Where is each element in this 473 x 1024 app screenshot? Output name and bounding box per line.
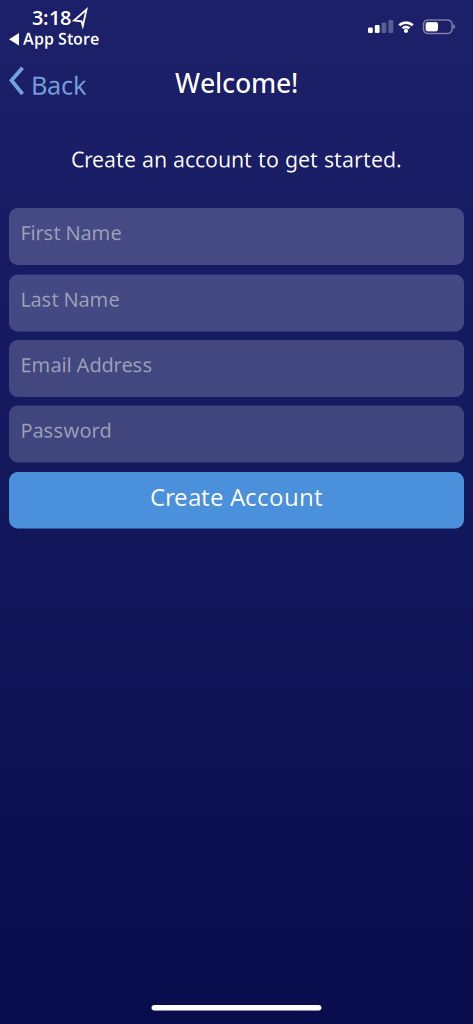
staticText: 3:18 (32, 4, 71, 31)
staticText: Password (20, 417, 111, 443)
staticText: Create an account to get started. (71, 145, 402, 173)
staticText: App Store (23, 28, 99, 49)
staticText: First Name (20, 219, 121, 246)
button[interactable]: Email Address (9, 340, 464, 397)
button[interactable]: Create Account (9, 472, 464, 528)
button[interactable]: Password (9, 405, 464, 462)
staticText: Back (31, 68, 87, 102)
staticText: Welcome! (175, 65, 298, 100)
staticText: Create Account (150, 481, 323, 513)
button[interactable]: Last Name (9, 274, 464, 331)
staticText: Last Name (20, 286, 119, 312)
staticText: Email Address (20, 351, 152, 378)
button[interactable]: First Name (9, 208, 464, 265)
button[interactable]: Back (0, 67, 100, 107)
